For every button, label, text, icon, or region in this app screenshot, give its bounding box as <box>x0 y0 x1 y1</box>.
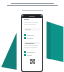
button[interactable] <box>24 28 40 31</box>
button[interactable] <box>24 54 40 56</box>
button[interactable] <box>24 51 40 53</box>
button[interactable] <box>24 42 40 44</box>
button[interactable] <box>24 34 40 36</box>
button[interactable]: QR code <box>30 59 35 64</box>
button[interactable] <box>24 37 40 39</box>
